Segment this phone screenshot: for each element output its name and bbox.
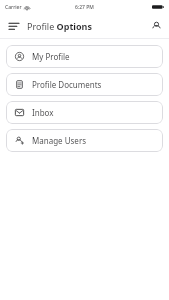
button[interactable]: Manage Users: [6, 129, 163, 152]
staticText: Inbox: [32, 107, 54, 118]
staticText: Profile Documents: [32, 79, 102, 90]
button[interactable]: Profile Documents: [6, 73, 163, 96]
button[interactable]: Open navigation menu: [6, 18, 22, 34]
staticText: Profile Options: [27, 20, 92, 32]
staticText: Carrier: [5, 4, 22, 11]
staticText: Manage Users: [32, 135, 87, 146]
button[interactable]: My Profile: [6, 45, 163, 68]
staticText: My Profile: [32, 51, 70, 62]
staticText: 6:27 PM: [75, 4, 94, 11]
button[interactable]: Inbox: [6, 101, 163, 124]
button[interactable]: Account: [148, 18, 164, 34]
